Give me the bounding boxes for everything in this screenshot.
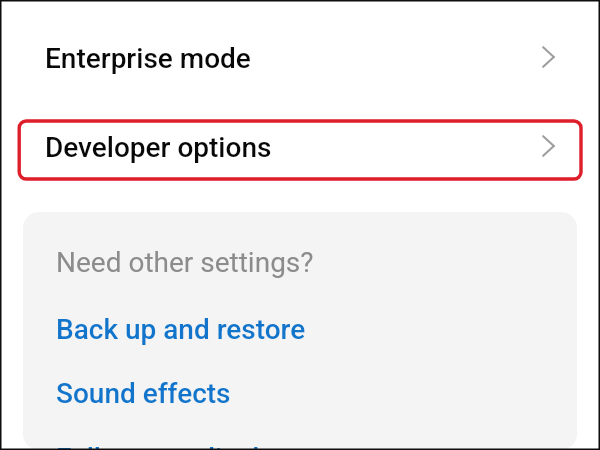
staticText: Need other settings? [56, 246, 314, 279]
button[interactable]: Developer options [2, 116, 598, 178]
button[interactable]: Full screen display [23, 436, 577, 450]
button[interactable]: Back up and restore [23, 307, 577, 351]
staticText: Developer options [45, 131, 272, 164]
other: Open [542, 46, 555, 68]
button[interactable]: Sound effects [23, 371, 577, 415]
staticText: Back up and restore [56, 313, 306, 346]
staticText: Full screen display [56, 442, 288, 450]
button[interactable]: Enterprise mode [2, 2, 598, 114]
staticText: Enterprise mode [45, 42, 251, 75]
staticText: Sound effects [56, 377, 231, 410]
other: Open [542, 135, 555, 157]
